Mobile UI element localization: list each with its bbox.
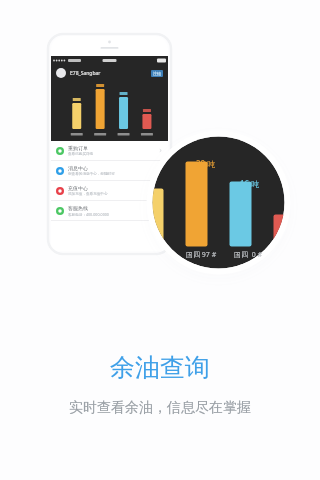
staticText: E78_Sangbar <box>70 70 101 77</box>
button[interactable]: E78_Sangbar <box>51 65 168 81</box>
staticText: 16 吨 <box>240 178 260 189</box>
staticText: 重购订单 <box>68 145 88 151</box>
button[interactable]: 充值中心 <box>51 181 168 200</box>
staticText: 实时查看余油，信息尽在掌握 <box>69 399 251 417</box>
staticText: 客服热线 <box>68 205 88 211</box>
staticText: 查看已购买详情 <box>68 152 94 157</box>
staticText: 国四 97 # <box>186 250 217 260</box>
staticText: 国四 0 # <box>234 250 262 260</box>
button[interactable]: 余油放大预览 <box>146 130 291 275</box>
staticText: 充值中心 <box>68 185 88 191</box>
button[interactable]: 消息中心 <box>51 161 168 180</box>
button[interactable]: 重购订单 <box>51 141 168 160</box>
staticText: 余油查询 <box>110 352 210 383</box>
staticText: 客服电话：400-000-0000 <box>68 212 109 217</box>
staticText: 注销 <box>153 71 161 76</box>
staticText: 20 吨 <box>196 158 216 169</box>
other: 注销 <box>153 71 161 76</box>
staticText: 消息中心 <box>68 165 88 171</box>
staticText: 您查看的消息中心，您随时可 <box>68 172 115 177</box>
staticText: 添加充值，查看充值中心 <box>68 192 108 197</box>
button[interactable]: 客服热线 <box>51 201 168 220</box>
